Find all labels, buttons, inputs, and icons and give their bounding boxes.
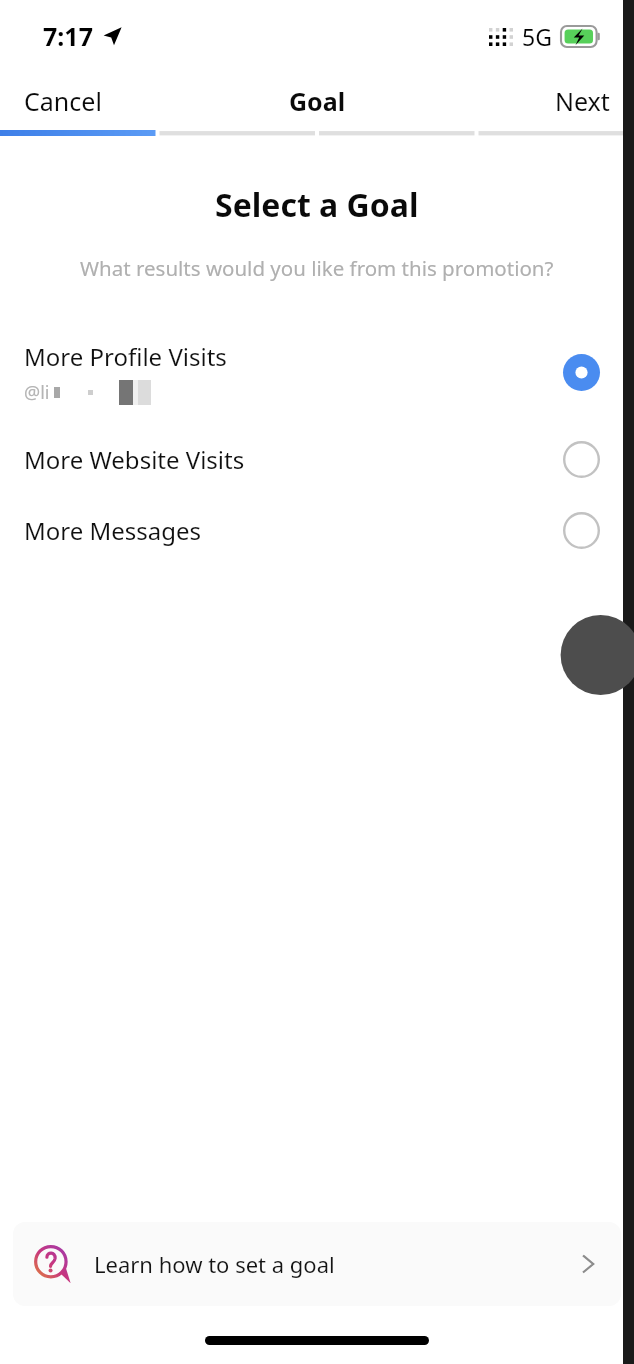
button[interactable]: More Website Visits: [0, 435, 634, 484]
staticText: Learn how to set a goal: [94, 1249, 335, 1279]
other: Help: [33, 1245, 71, 1283]
other: Open: [575, 1251, 601, 1277]
button[interactable]: Next: [531, 74, 634, 128]
button[interactable]: Help: [13, 1222, 621, 1306]
staticText: Cancel: [24, 84, 102, 118]
staticText: More Website Visits: [24, 443, 245, 476]
staticText: More Messages: [24, 514, 202, 547]
staticText: Next: [555, 84, 610, 118]
staticText: More Profile Visits: [24, 340, 227, 373]
staticText: Select a Goal: [215, 183, 419, 227]
button[interactable]: More Messages: [0, 506, 634, 555]
staticText: What results would you like from this pr…: [80, 254, 554, 282]
button[interactable]: Cancel: [0, 74, 126, 128]
staticText: 7:17: [43, 19, 93, 53]
staticText: Goal: [289, 84, 346, 118]
staticText: @li: [24, 380, 50, 405]
button[interactable]: More Profile Visits: [0, 334, 634, 411]
staticText: 5G: [522, 21, 552, 52]
